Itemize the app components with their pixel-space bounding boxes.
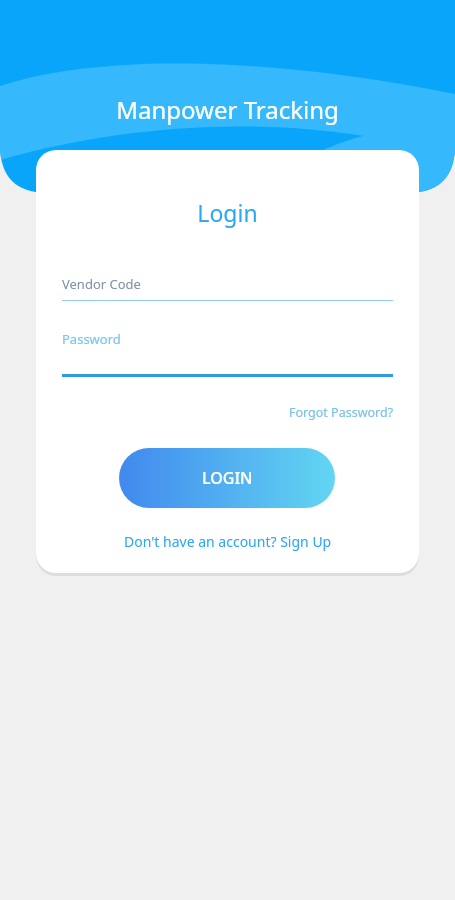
button[interactable]: LOGIN — [119, 448, 335, 508]
button[interactable]: Vendor Code — [62, 275, 393, 301]
staticText: Login — [36, 197, 419, 228]
button[interactable]: Don't have an account? Sign Up — [120, 530, 336, 553]
staticText: Forgot Password? — [289, 404, 394, 421]
button[interactable]: Forgot Password? — [287, 402, 396, 423]
button[interactable]: Password — [62, 330, 393, 377]
staticText: Password — [62, 330, 121, 348]
staticText: Don't have an account? Sign Up — [124, 532, 332, 551]
staticText: Vendor Code — [62, 275, 141, 293]
staticText: Manpower Tracking — [0, 93, 455, 126]
staticText: LOGIN — [202, 467, 253, 489]
